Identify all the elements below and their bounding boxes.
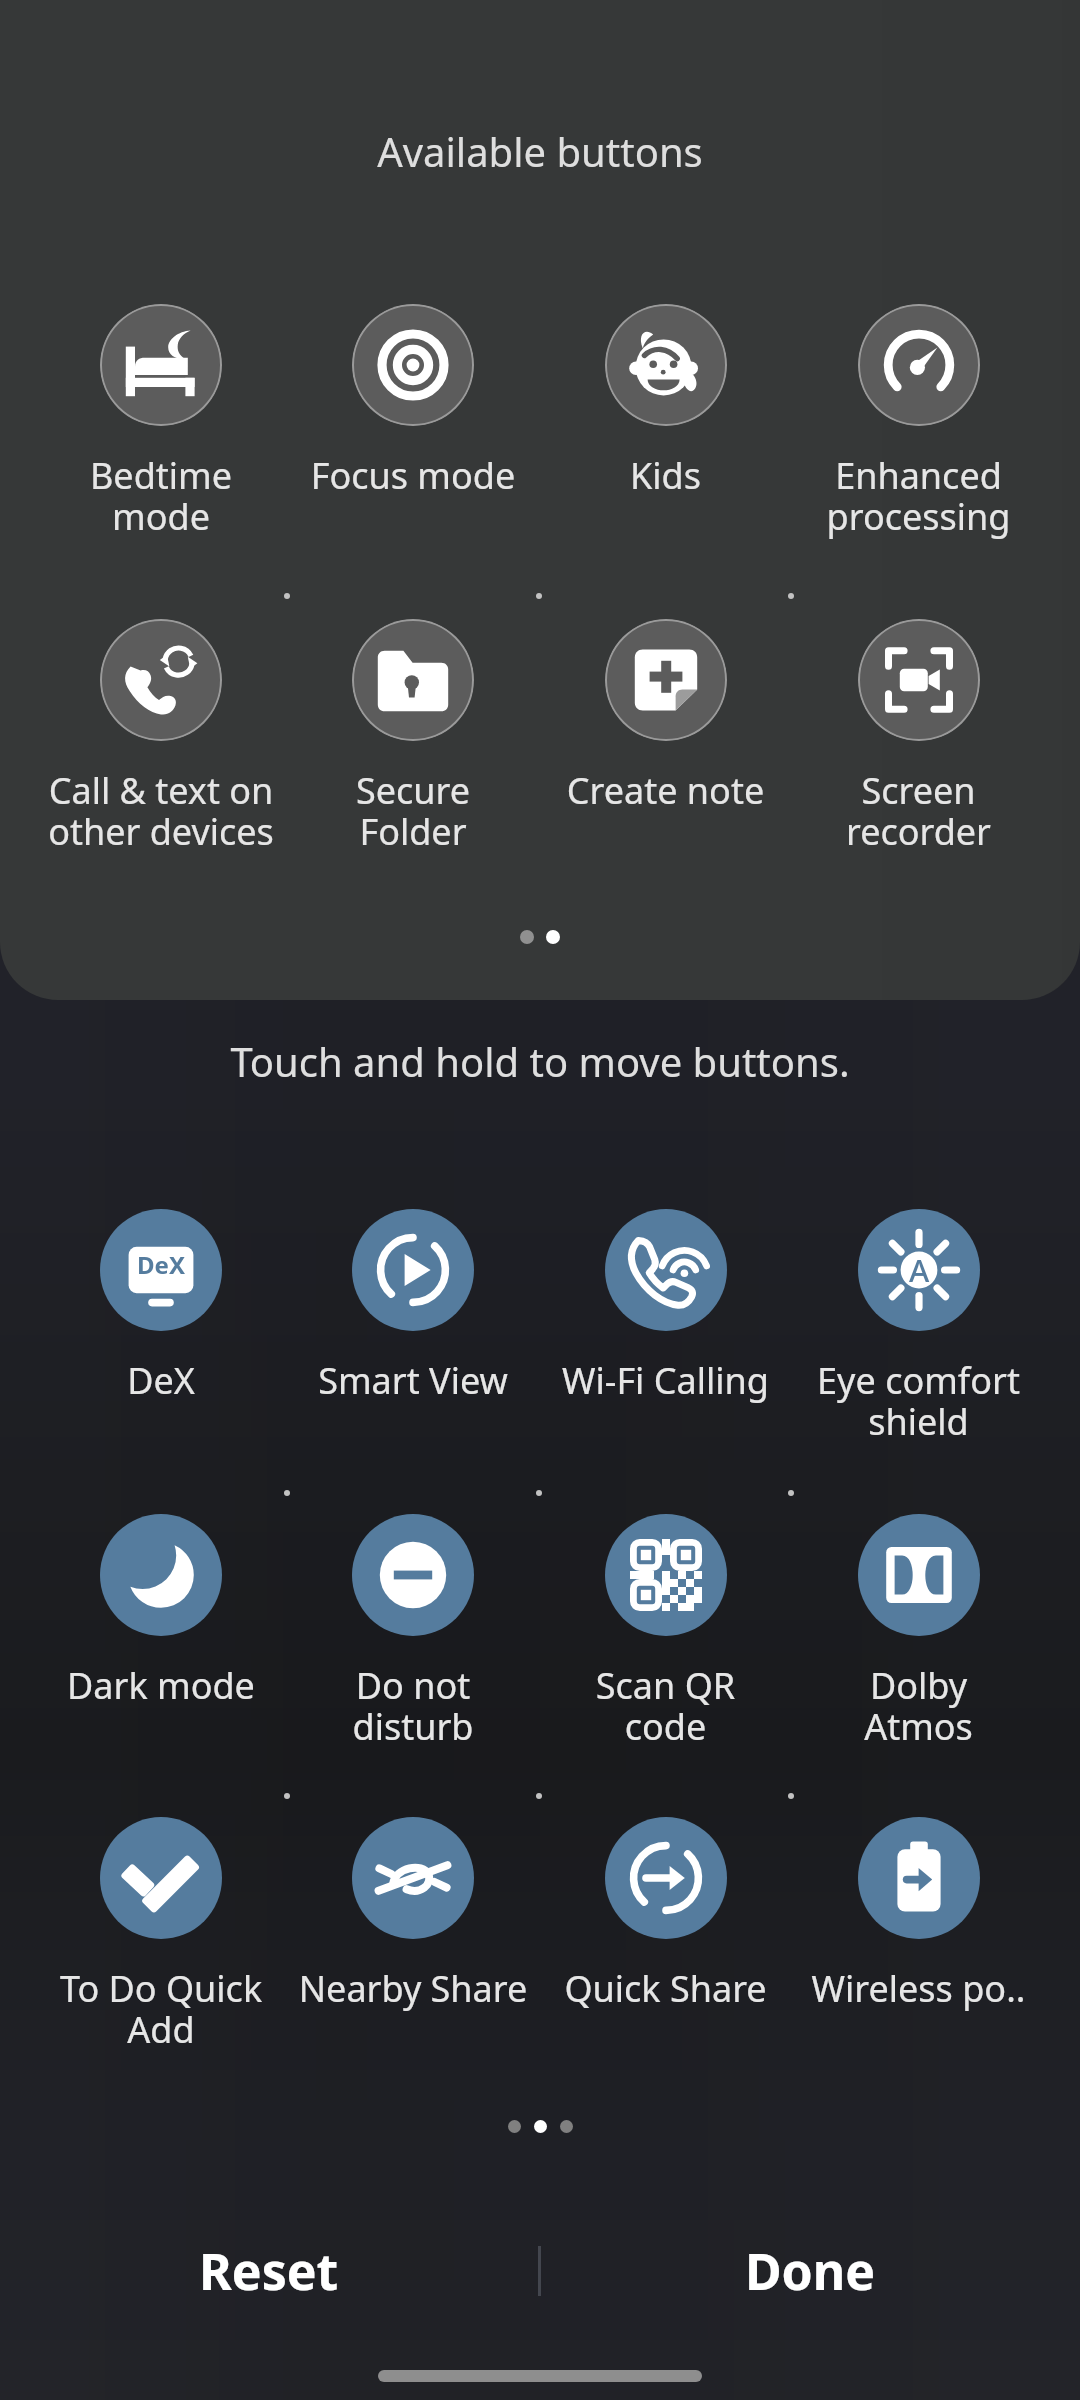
- button[interactable]: Dolby Atmos: [792, 1514, 1045, 1751]
- staticText: Call & text on other devices: [35, 766, 287, 856]
- button[interactable]: Scan QR code: [539, 1514, 792, 1751]
- staticText: Focus mode: [287, 451, 539, 500]
- staticText: Create note: [539, 766, 792, 815]
- button[interactable]: Kids: [539, 304, 792, 500]
- staticText: Wi-Fi Calling: [539, 1356, 792, 1405]
- staticText: Done: [745, 2237, 876, 2305]
- staticText: Smart View: [287, 1356, 539, 1405]
- staticText: Quick Share: [539, 1964, 792, 2013]
- staticText: Bedtime mode: [35, 451, 287, 541]
- staticText: Kids: [539, 451, 792, 500]
- staticText: To Do Quick Add: [35, 1964, 287, 2054]
- staticText: Touch and hold to move buttons.: [0, 1034, 1080, 1088]
- button[interactable]: Reset: [0, 2211, 538, 2331]
- staticText: Nearby Share: [287, 1964, 539, 2013]
- staticText: Wireless po..: [792, 1964, 1045, 2013]
- staticText: DeX: [35, 1356, 287, 1405]
- staticText: Dolby Atmos: [792, 1661, 1045, 1751]
- button[interactable]: Eye comfort shield: [792, 1209, 1045, 1446]
- staticText: Secure Folder: [287, 766, 539, 856]
- button[interactable]: Wireless po..: [792, 1817, 1045, 2013]
- staticText: Enhanced processing: [792, 451, 1045, 541]
- staticText: A: [909, 1249, 930, 1291]
- button[interactable]: Wi-Fi Calling: [539, 1209, 792, 1405]
- staticText: Eye comfort shield: [792, 1356, 1045, 1446]
- button[interactable]: Smart View: [287, 1209, 539, 1405]
- button[interactable]: Do not disturb: [287, 1514, 539, 1751]
- button[interactable]: Enhanced processing: [792, 304, 1045, 541]
- staticText: Do not disturb: [287, 1661, 539, 1751]
- button[interactable]: DeX: [35, 1209, 287, 1405]
- button[interactable]: To Do Quick Add: [35, 1817, 287, 2054]
- staticText: Screen recorder: [792, 766, 1045, 856]
- button[interactable]: Call & text on other devices: [35, 619, 287, 856]
- staticText: Scan QR code: [539, 1661, 792, 1751]
- button[interactable]: Focus mode: [287, 304, 539, 500]
- staticText: Available buttons: [0, 124, 1080, 178]
- staticText: Reset: [199, 2237, 339, 2305]
- button[interactable]: Nearby Share: [287, 1817, 539, 2013]
- staticText: DeX: [137, 1248, 185, 1281]
- button[interactable]: Dark mode: [35, 1514, 287, 1710]
- button[interactable]: Quick Share: [539, 1817, 792, 2013]
- button[interactable]: Secure Folder: [287, 619, 539, 856]
- button[interactable]: Bedtime mode: [35, 304, 287, 541]
- button[interactable]: Create note: [539, 619, 792, 815]
- button[interactable]: Done: [541, 2211, 1080, 2331]
- staticText: Dark mode: [35, 1661, 287, 1710]
- button[interactable]: Screen recorder: [792, 619, 1045, 856]
